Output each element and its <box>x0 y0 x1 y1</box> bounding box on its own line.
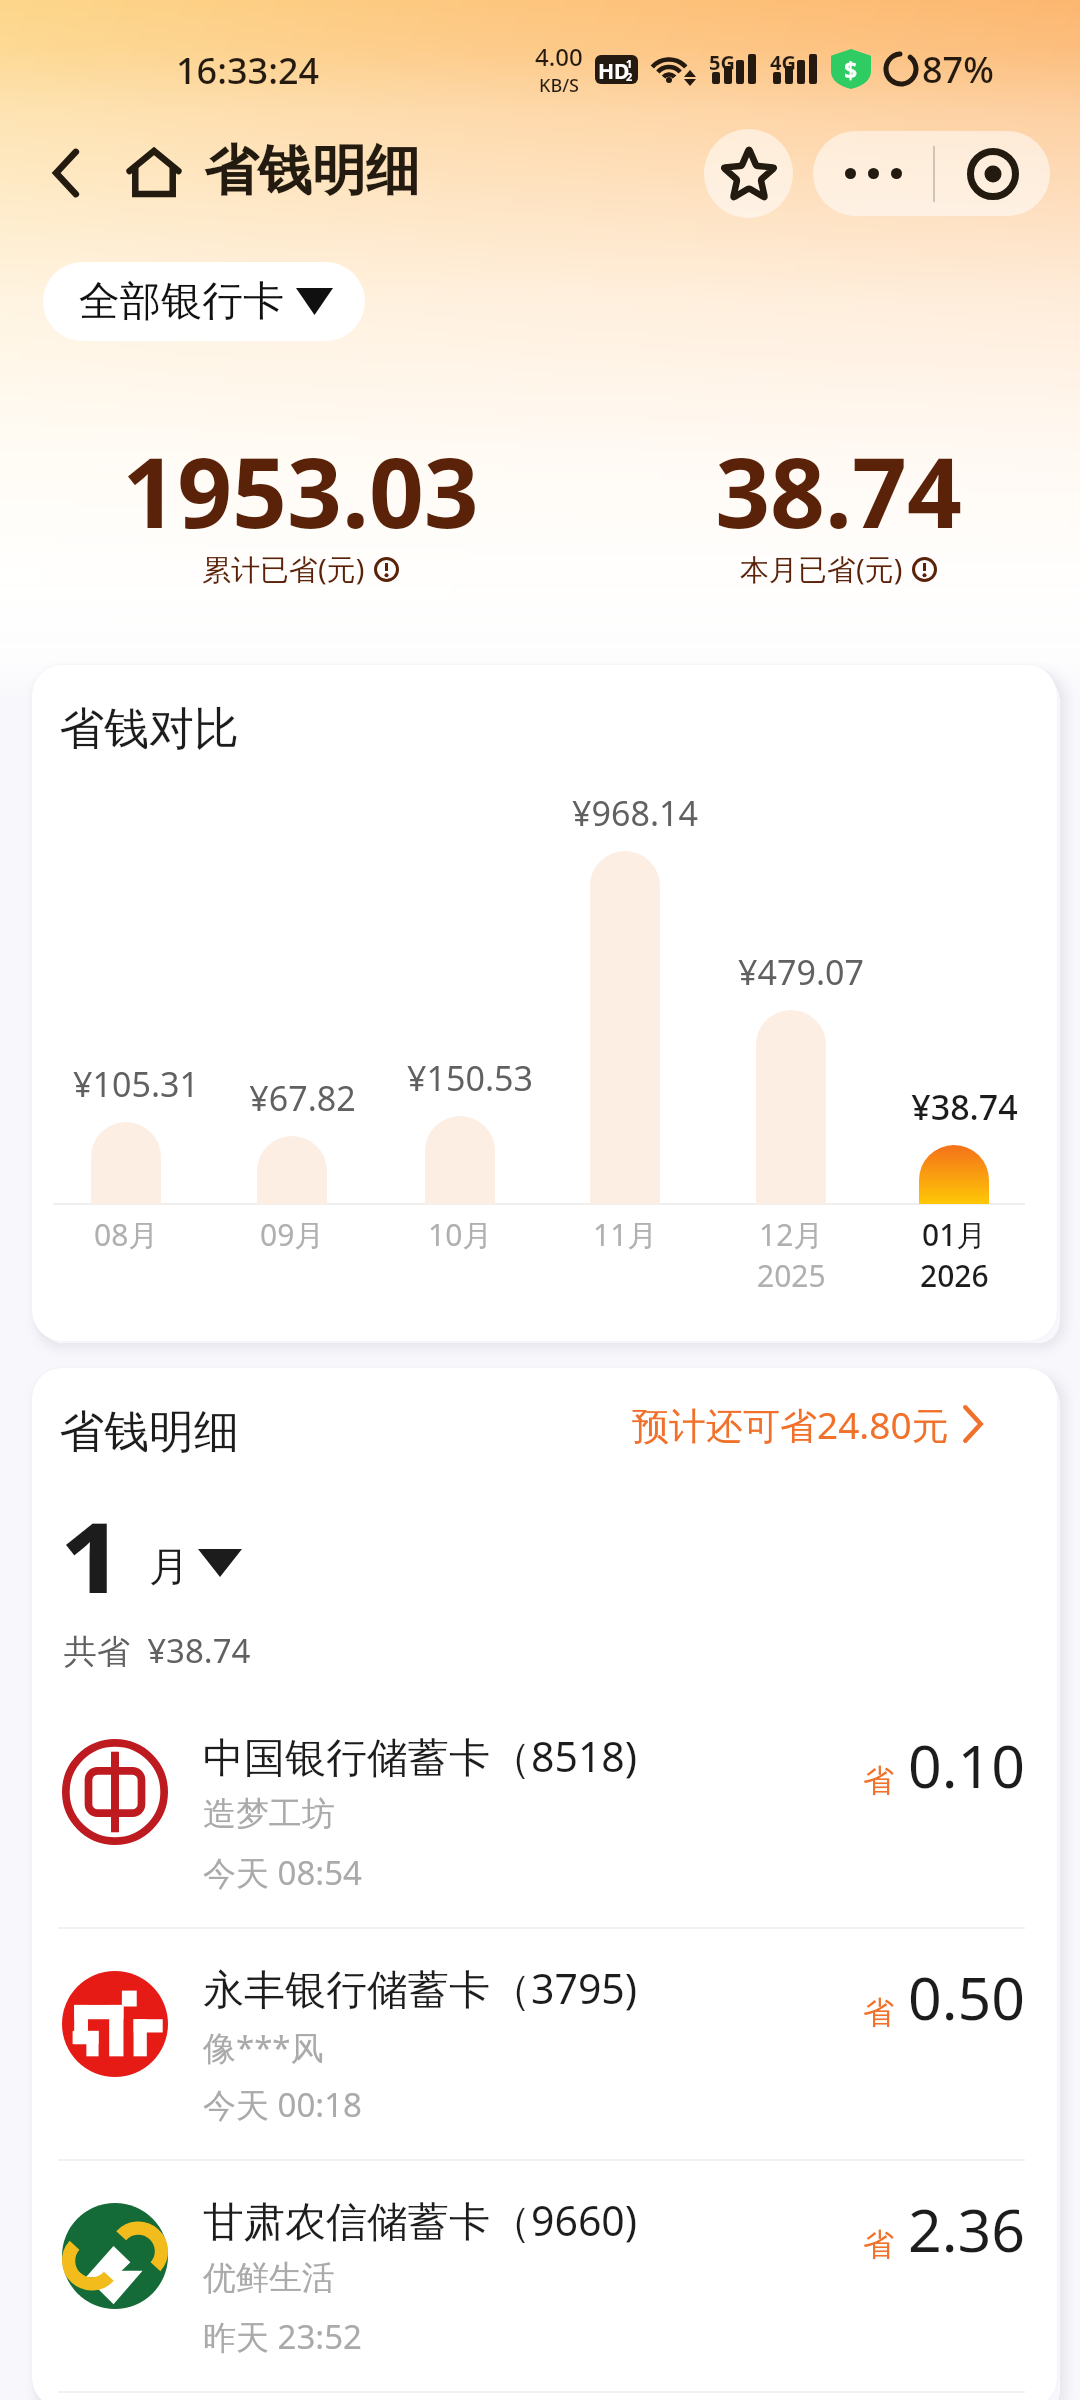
staticText: 省 <box>863 1993 894 2032</box>
staticText: 造梦工坊 <box>203 1793 335 1835</box>
staticText: 1 <box>59 1483 126 1593</box>
staticText: 11月 <box>593 1214 658 1255</box>
staticText: 优鲜生活 <box>203 2257 335 2299</box>
staticText: 2026 <box>920 1255 989 1296</box>
staticText: 12月 <box>759 1214 824 1255</box>
staticText: 今天 08:54 <box>203 1850 362 1895</box>
staticText: ¥968.14 <box>572 790 698 836</box>
staticText: 10月 <box>428 1214 493 1255</box>
staticText: ¥67.82 <box>249 1075 356 1121</box>
staticText: ¥479.07 <box>738 949 864 995</box>
staticText: 2.36 <box>908 2189 1026 2269</box>
staticText: 38.74 <box>715 425 962 556</box>
staticText: 09月 <box>260 1214 325 1255</box>
staticText: 预计还可省24.80元 <box>632 1399 949 1450</box>
staticText: 5G <box>709 49 735 76</box>
button[interactable]: Close <box>935 131 1050 216</box>
staticText: 16:33:24 <box>176 46 320 95</box>
staticText: 4G <box>770 49 796 76</box>
staticText: ¥105.31 <box>73 1061 199 1107</box>
staticText: 永丰银行储蓄卡（3795) <box>203 1960 638 2016</box>
button[interactable]: Back <box>30 137 102 209</box>
staticText: 省钱明细 <box>59 1404 239 1461</box>
staticText: $ <box>844 54 858 85</box>
staticText: ¥150.53 <box>407 1055 533 1101</box>
staticText: 共省 ¥38.74 <box>64 1628 251 1673</box>
staticText: 今天 00:18 <box>203 2082 362 2127</box>
staticText: 甘肃农信储蓄卡（9660) <box>203 2192 638 2248</box>
staticText: 中国银行储蓄卡（8518) <box>203 1728 638 1784</box>
staticText: 4.00 <box>535 40 583 73</box>
button[interactable]: 中国银行储蓄卡（8518) <box>32 1701 1057 1933</box>
staticText: 像***风 <box>203 2025 324 2070</box>
staticText: KB/S <box>539 73 579 98</box>
button[interactable]: Favorite <box>704 129 793 218</box>
staticText: 省钱对比 <box>59 701 239 758</box>
staticText: 1 <box>626 56 633 71</box>
button[interactable]: 甘肃农信储蓄卡（9660) <box>32 2165 1057 2397</box>
staticText: 87% <box>922 45 994 94</box>
staticText: ¥38.74 <box>911 1084 1018 1130</box>
staticText: 2025 <box>757 1255 826 1296</box>
button[interactable]: Home <box>118 137 190 209</box>
staticText: 1953.03 <box>122 425 479 556</box>
staticText: 累计已省(元) <box>202 549 365 589</box>
staticText: 0.50 <box>908 1957 1026 2037</box>
staticText: 月 <box>149 1541 189 1591</box>
staticText: 08月 <box>94 1214 159 1255</box>
staticText: 昨天 23:52 <box>203 2314 362 2359</box>
staticText: 本月已省(元) <box>740 549 903 589</box>
staticText: HD <box>598 57 630 84</box>
button[interactable]: 预计还可省24.80元 <box>632 1396 985 1452</box>
staticText: 省 <box>863 2225 894 2264</box>
button[interactable]: 永丰银行储蓄卡（3795) <box>32 1933 1057 2165</box>
staticText: 01月 <box>922 1214 987 1255</box>
button[interactable]: 全部银行卡 <box>43 262 365 341</box>
button[interactable]: 1 <box>56 1494 276 1604</box>
staticText: 0.10 <box>908 1725 1026 1805</box>
staticText: 省 <box>863 1761 894 1800</box>
staticText: 2 <box>626 69 633 84</box>
button[interactable]: More options <box>813 131 933 216</box>
staticText: 省钱明细 <box>204 137 420 205</box>
staticText: 全部银行卡 <box>79 276 284 328</box>
